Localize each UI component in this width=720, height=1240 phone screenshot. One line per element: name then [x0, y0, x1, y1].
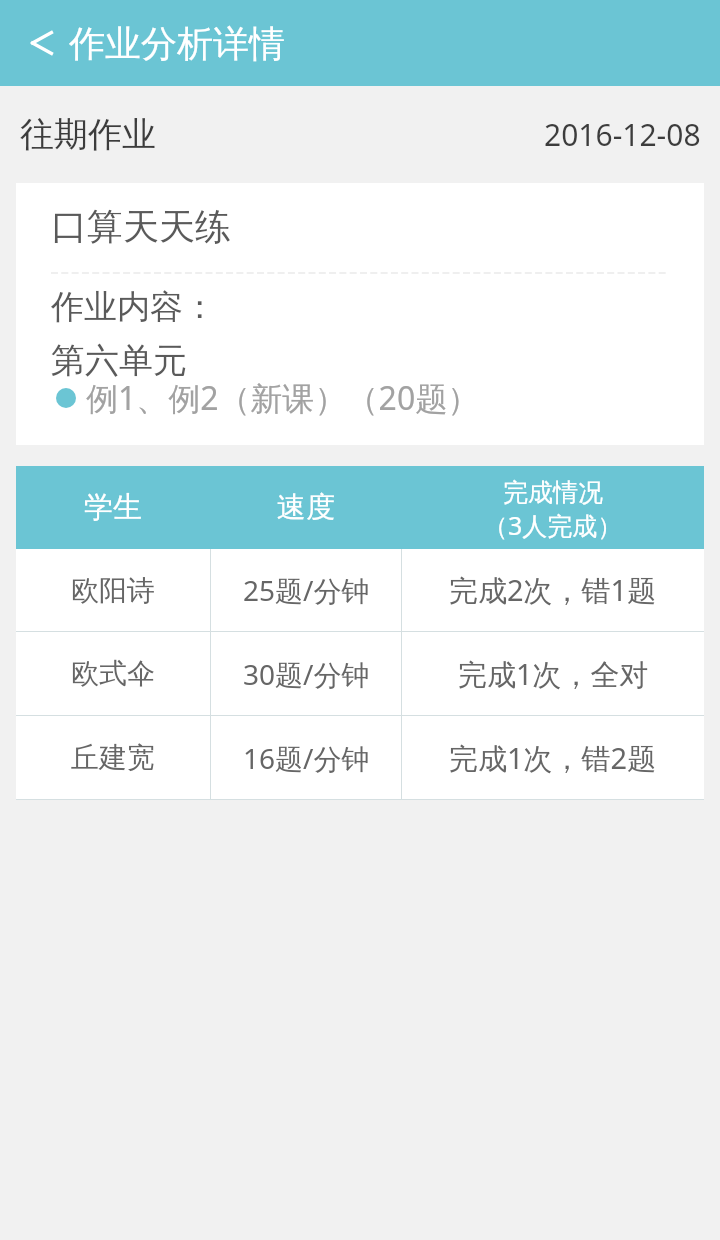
- staticText: 口算天天练: [51, 204, 231, 249]
- staticText: 丘建宽: [71, 740, 155, 775]
- staticText: 25题/分钟: [243, 571, 370, 609]
- staticText: 第六单元: [51, 339, 187, 382]
- staticText: 作业分析详情: [69, 21, 285, 66]
- staticText: （3人完成）: [483, 508, 623, 542]
- staticText: 往期作业: [20, 113, 156, 156]
- button[interactable]: 往期作业: [0, 86, 720, 183]
- button[interactable]: 完成情况: [401, 466, 704, 549]
- staticText: 例1、例2（新课）（20题）: [86, 376, 480, 420]
- staticText: 作业内容：: [51, 286, 216, 328]
- button[interactable]: Back: [10, 11, 74, 75]
- button[interactable]: 口算天天练: [16, 183, 704, 445]
- staticText: 欧阳诗: [71, 573, 155, 608]
- button[interactable]: 欧式伞: [16, 632, 704, 716]
- button[interactable]: 欧阳诗: [16, 549, 704, 632]
- staticText: 16题/分钟: [243, 739, 370, 777]
- staticText: 速度: [277, 489, 335, 526]
- staticText: 完成1次，全对: [458, 654, 649, 694]
- staticText: 学生: [84, 489, 142, 526]
- staticText: 2016-12-08: [544, 114, 701, 155]
- button[interactable]: 丘建宽: [16, 716, 704, 800]
- staticText: 欧式伞: [71, 656, 155, 691]
- staticText: 完成1次，错2题: [449, 738, 657, 778]
- staticText: 完成2次，错1题: [449, 570, 657, 610]
- button[interactable]: 速度: [210, 466, 401, 549]
- staticText: 完成情况: [503, 477, 603, 508]
- staticText: 30题/分钟: [243, 655, 370, 693]
- button[interactable]: 学生: [16, 466, 210, 549]
